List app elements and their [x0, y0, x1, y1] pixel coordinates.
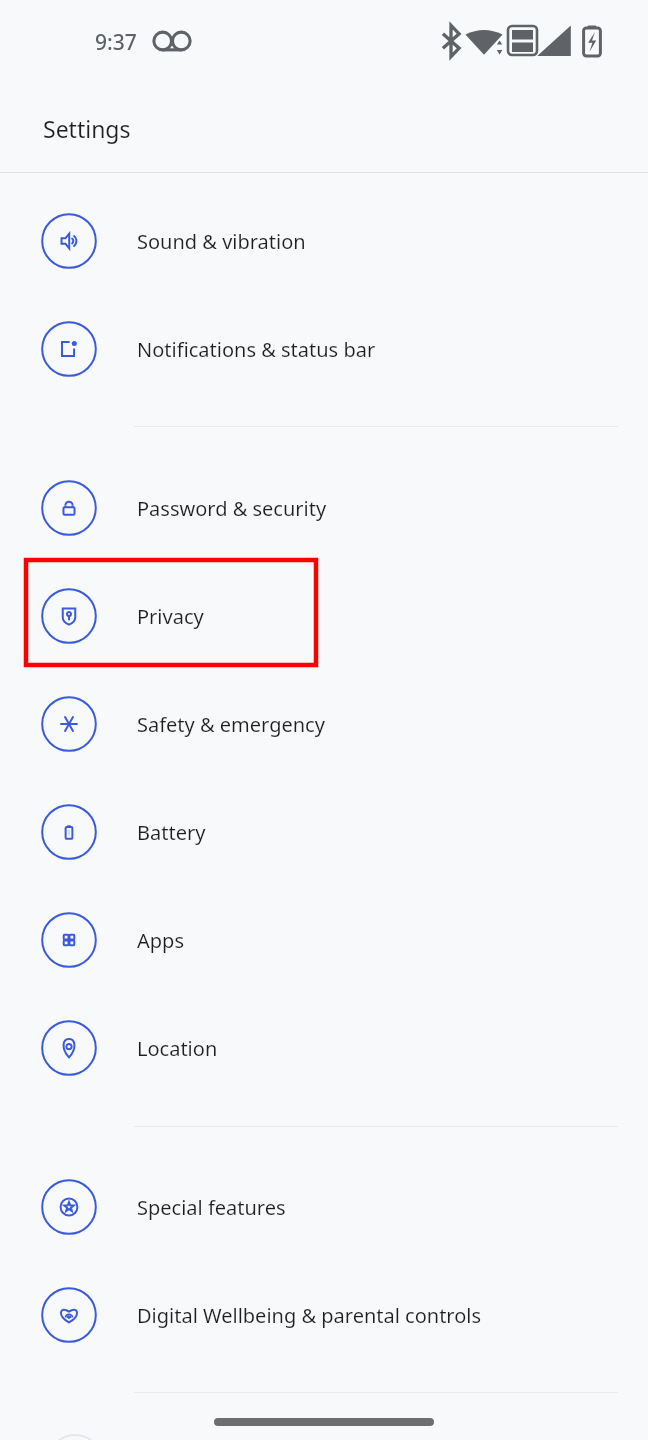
staticText: Settings: [43, 113, 131, 144]
button[interactable]: Notifications & status bar: [0, 295, 648, 403]
button[interactable]: Safety & emergency: [0, 670, 648, 778]
staticText: Battery: [137, 819, 206, 846]
button[interactable]: Sound & vibration: [0, 187, 648, 295]
staticText: Safety & emergency: [137, 711, 325, 738]
button[interactable]: Privacy: [0, 562, 648, 670]
button[interactable]: Special features: [0, 1153, 648, 1261]
button[interactable]: Password & security: [0, 454, 648, 562]
staticText: 9:37: [95, 28, 137, 57]
staticText: Digital Wellbeing & parental controls: [137, 1302, 482, 1329]
staticText: Notifications & status bar: [137, 336, 376, 363]
staticText: Apps: [137, 927, 184, 954]
button[interactable]: Location: [0, 994, 648, 1102]
staticText: Privacy: [137, 603, 204, 630]
button[interactable]: Battery: [0, 778, 648, 886]
staticText: Sound & vibration: [137, 228, 306, 255]
button[interactable]: Apps: [0, 886, 648, 994]
staticText: Password & security: [137, 495, 327, 522]
staticText: Special features: [137, 1194, 286, 1221]
button[interactable]: Digital Wellbeing & parental controls: [0, 1261, 648, 1369]
staticText: Location: [137, 1035, 218, 1062]
